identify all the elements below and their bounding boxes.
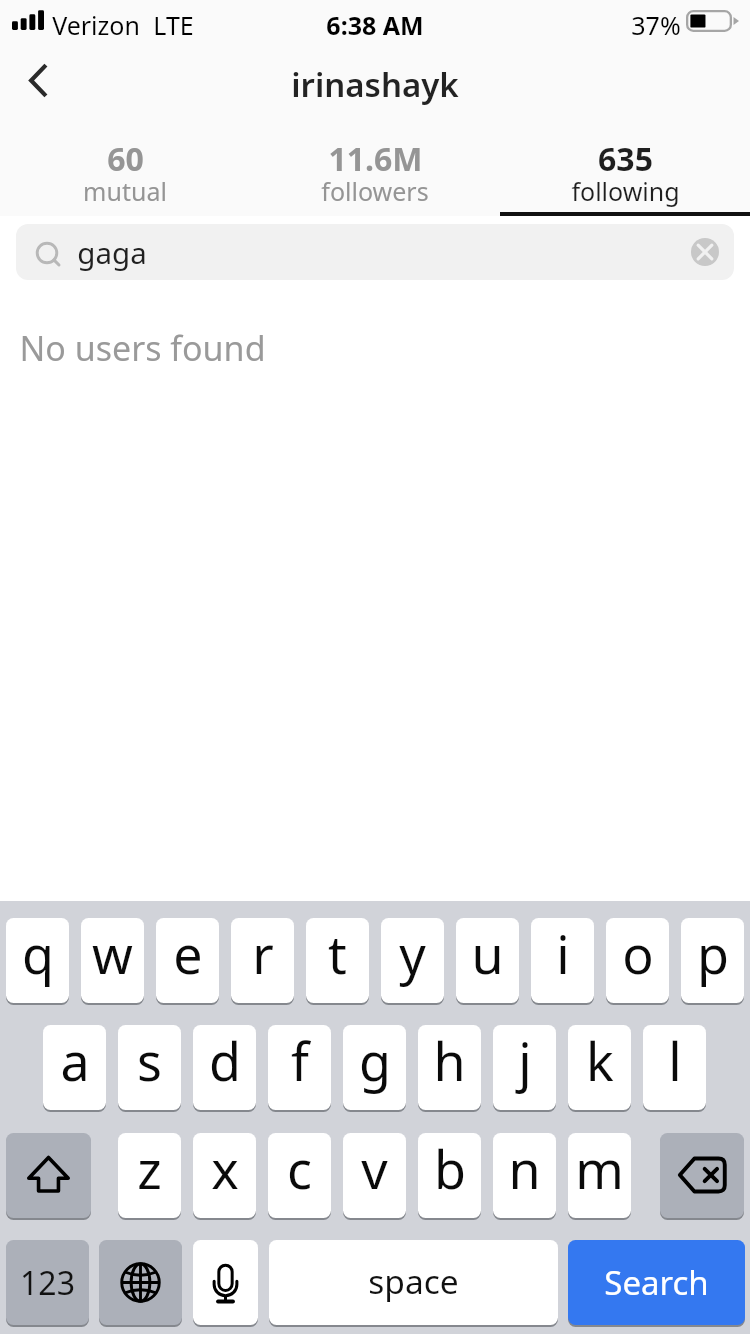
staticText: following: [571, 174, 680, 208]
staticText: z: [137, 1133, 162, 1204]
staticText: mutual: [83, 174, 167, 208]
button[interactable]: g: [343, 1025, 406, 1110]
staticText: m: [575, 1133, 624, 1204]
staticText: Search: [604, 1260, 709, 1305]
staticText: b: [434, 1133, 466, 1204]
staticText: 123: [20, 1261, 75, 1305]
button[interactable]: t: [306, 918, 369, 1003]
staticText: i: [556, 918, 570, 989]
staticText: s: [137, 1025, 162, 1096]
staticText: p: [697, 918, 729, 989]
button[interactable]: q: [6, 918, 69, 1003]
button[interactable]: Back: [8, 46, 70, 122]
button[interactable]: gaga: [16, 224, 734, 280]
button[interactable]: d: [193, 1025, 256, 1110]
staticText: f: [291, 1025, 309, 1096]
button[interactable]: z: [118, 1133, 181, 1218]
staticText: g: [359, 1025, 391, 1096]
button[interactable]: v: [343, 1133, 406, 1218]
button[interactable]: f: [268, 1025, 331, 1110]
button[interactable]: Shift: [6, 1133, 91, 1218]
button[interactable]: w: [81, 918, 144, 1003]
staticText: u: [471, 918, 504, 989]
button[interactable]: Dictation: [193, 1240, 258, 1325]
button[interactable]: n: [493, 1133, 556, 1218]
staticText: 37%: [631, 8, 681, 42]
staticText: 11.6M: [328, 137, 423, 181]
staticText: v: [361, 1133, 388, 1204]
staticText: r: [252, 918, 274, 989]
staticText: followers: [321, 174, 429, 208]
staticText: h: [433, 1025, 466, 1096]
button[interactable]: h: [418, 1025, 481, 1110]
button[interactable]: j: [493, 1025, 556, 1110]
staticText: No users found: [19, 325, 266, 371]
button[interactable]: Clear search text: [680, 227, 730, 277]
button[interactable]: y: [381, 918, 444, 1003]
staticText: y: [399, 918, 426, 989]
button[interactable]: e: [156, 918, 219, 1003]
staticText: j: [518, 1025, 532, 1096]
staticText: gaga: [77, 232, 147, 272]
button[interactable]: r: [231, 918, 294, 1003]
staticText: e: [173, 918, 203, 989]
staticText: k: [586, 1025, 614, 1096]
staticText: q: [22, 918, 54, 989]
staticText: Verizon: [52, 8, 140, 42]
staticText: t: [328, 918, 347, 989]
staticText: a: [60, 1025, 90, 1096]
button[interactable]: 11.6M: [250, 122, 500, 216]
staticText: d: [209, 1025, 241, 1096]
button[interactable]: 635: [500, 122, 750, 216]
button[interactable]: i: [531, 918, 594, 1003]
button[interactable]: Backspace: [660, 1133, 744, 1218]
button[interactable]: l: [643, 1025, 706, 1110]
staticText: c: [287, 1133, 312, 1204]
button[interactable]: b: [418, 1133, 481, 1218]
staticText: o: [622, 918, 654, 989]
staticText: 60: [107, 137, 144, 181]
staticText: x: [211, 1133, 239, 1204]
button[interactable]: c: [268, 1133, 331, 1218]
staticText: irinashayk: [291, 62, 459, 107]
staticText: LTE: [153, 8, 194, 42]
button[interactable]: a: [43, 1025, 106, 1110]
button[interactable]: 123: [6, 1240, 89, 1325]
staticText: 635: [598, 137, 653, 181]
button[interactable]: space: [269, 1240, 558, 1325]
staticText: n: [508, 1133, 541, 1204]
button[interactable]: u: [456, 918, 519, 1003]
staticText: space: [368, 1258, 459, 1304]
staticText: l: [668, 1025, 682, 1096]
button[interactable]: Next keyboard: [99, 1240, 182, 1325]
button[interactable]: 60: [0, 122, 250, 216]
button[interactable]: s: [118, 1025, 181, 1110]
staticText: w: [92, 918, 133, 989]
button[interactable]: p: [681, 918, 744, 1003]
staticText: 6:38 AM: [326, 8, 424, 42]
button[interactable]: Search: [568, 1240, 745, 1325]
button[interactable]: m: [568, 1133, 631, 1218]
button[interactable]: k: [568, 1025, 631, 1110]
button[interactable]: x: [193, 1133, 256, 1218]
button[interactable]: o: [606, 918, 669, 1003]
